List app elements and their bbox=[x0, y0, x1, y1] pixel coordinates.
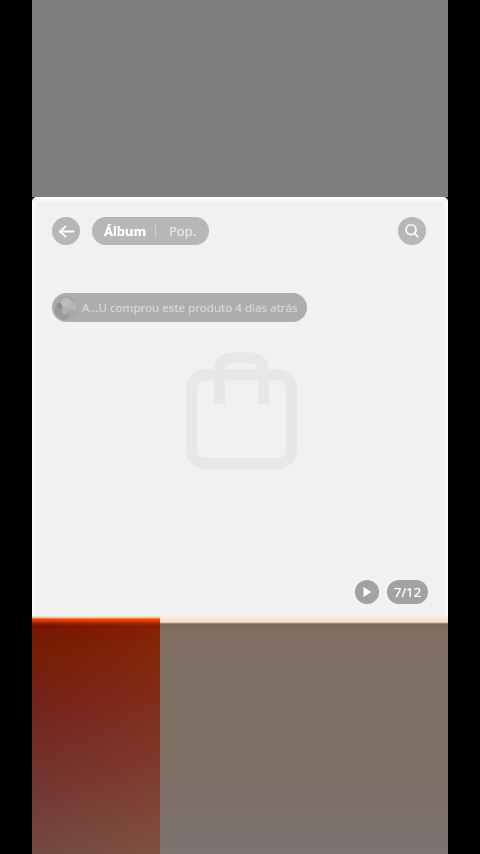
button[interactable]: A...U comprou este produto 4 dias atrás bbox=[52, 293, 307, 322]
button[interactable]: Search bbox=[398, 217, 426, 245]
button[interactable]: Play bbox=[355, 580, 379, 604]
staticText: Álbum bbox=[104, 222, 147, 240]
button[interactable]: Pop. bbox=[156, 217, 209, 245]
staticText: 7/12 bbox=[394, 583, 422, 601]
button[interactable]: Álbum bbox=[92, 217, 155, 245]
staticText: A...U comprou este produto 4 dias atrás bbox=[82, 300, 298, 316]
button[interactable]: 7/12 bbox=[387, 580, 428, 604]
staticText: Pop. bbox=[169, 222, 197, 240]
button[interactable]: Back bbox=[52, 217, 80, 245]
